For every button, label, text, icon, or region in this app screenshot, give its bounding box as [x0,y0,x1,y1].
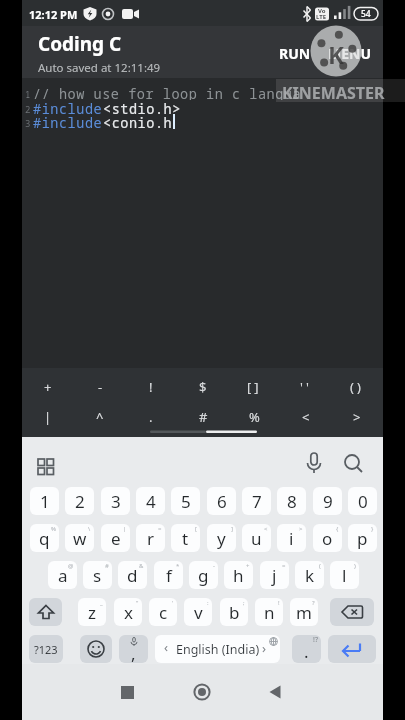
staticText: 0 [358,490,368,513]
button[interactable]: g [189,561,218,589]
button[interactable]: t [171,524,200,552]
button[interactable]: 0 [348,487,377,515]
staticText: 3 [111,490,121,513]
button[interactable]: n [255,598,283,626]
staticText: ] [231,525,233,533]
staticText: // how use for loop in c langua [33,85,302,100]
staticText: 2 [75,490,85,513]
button[interactable]: b [220,598,248,626]
button[interactable] [330,598,374,626]
button[interactable]: - [74,376,126,398]
button[interactable]: '' [280,376,332,398]
staticText: m [296,601,312,624]
staticText: " [136,599,139,607]
button[interactable]: h [224,561,253,589]
button[interactable]: 6 [207,487,236,515]
staticText: , [131,642,136,663]
button[interactable]: o [313,524,342,552]
button[interactable]: > [331,406,383,428]
button[interactable]: , [119,635,148,663]
button[interactable] [113,678,141,706]
button[interactable]: 3 [101,487,130,515]
button[interactable]: 1 [30,487,59,515]
staticText: Vo [318,7,326,15]
button[interactable] [80,635,112,663]
button[interactable]: 9 [313,487,342,515]
button[interactable]: [] [228,376,280,398]
staticText: j [272,564,277,587]
staticText: [ [195,525,197,533]
button[interactable]: % [228,406,280,428]
button[interactable]: 8 [277,487,306,515]
button[interactable]: s [83,561,112,589]
staticText: 1 [40,490,50,513]
button[interactable] [261,678,289,706]
button[interactable]: l [330,561,359,589]
staticText: [] [247,378,262,396]
staticText: !? [313,635,318,645]
button[interactable]: # [177,406,229,428]
button[interactable]: 2 [65,487,94,515]
button[interactable] [328,635,376,663]
staticText: t [182,527,189,550]
staticText: RUN [279,44,311,63]
staticText: #include [33,100,103,115]
button[interactable]: x [114,598,142,626]
button[interactable]: 7 [242,487,271,515]
staticText: <stdio.h> [103,100,181,115]
button[interactable]: . [125,406,177,428]
staticText: \ [88,525,91,533]
staticText: n [264,601,275,624]
button[interactable]: z [78,598,106,626]
staticText: h [233,564,244,587]
button[interactable]: $ [177,376,229,398]
button[interactable]: . [292,635,321,663]
button[interactable] [29,598,62,626]
button[interactable]: ?123 [29,635,63,663]
staticText: # [199,408,208,426]
button[interactable]: f [154,561,183,589]
button[interactable] [188,678,216,706]
button[interactable]: m [290,598,318,626]
button[interactable]: RUN [277,42,313,64]
button[interactable]: i [277,524,306,552]
button[interactable]: + [22,376,74,398]
staticText: ( [319,562,321,570]
button[interactable]: v [184,598,212,626]
button[interactable]: MENU [327,42,373,64]
staticText: o [322,527,333,550]
staticText: l [342,564,347,587]
button[interactable]: () [331,376,383,398]
button[interactable]: d [118,561,147,589]
staticText: f [166,564,172,587]
staticText: 8 [287,490,297,513]
button[interactable]: k [295,561,324,589]
staticText: = [282,562,286,570]
button[interactable]: y [207,524,236,552]
button[interactable]: 4 [136,487,165,515]
button[interactable]: u [242,524,271,552]
button[interactable]: < [280,406,332,428]
button[interactable]: | [22,406,74,428]
button[interactable]: ^ [74,406,126,428]
button[interactable]: English (India) [155,635,280,663]
staticText: 4 [146,490,156,513]
staticText: K [328,38,344,64]
staticText: p [357,527,368,550]
staticText: ; [243,599,245,607]
staticText: + [44,378,52,396]
staticText: g [198,564,209,587]
button[interactable]: r [136,524,165,552]
staticText: . [304,640,309,663]
button[interactable]: w [65,524,94,552]
button[interactable]: e [101,524,130,552]
button[interactable]: a [48,561,77,589]
button[interactable]: ! [125,376,177,398]
staticText: > [299,525,303,533]
staticText: - [213,562,215,570]
button[interactable]: c [149,598,177,626]
button[interactable]: q [30,524,59,552]
button[interactable]: p [348,524,377,552]
button[interactable]: 5 [171,487,200,515]
button[interactable]: j [260,561,289,589]
